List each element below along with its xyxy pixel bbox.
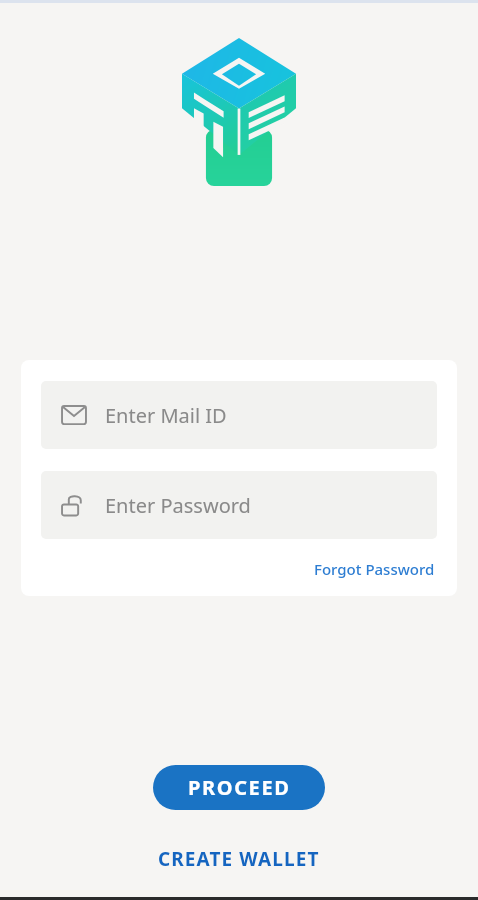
staticText: CREATE WALLET xyxy=(158,846,320,872)
button[interactable]: PROCEED xyxy=(153,765,325,810)
staticText: Enter Mail ID xyxy=(105,402,227,429)
button[interactable]: Password xyxy=(41,471,437,539)
button[interactable]: Email xyxy=(41,381,437,449)
staticText: Forgot Password xyxy=(314,559,435,579)
staticText: Enter Password xyxy=(105,492,251,519)
staticText: PROCEED xyxy=(188,774,291,801)
button[interactable]: CREATE WALLET xyxy=(146,840,332,878)
other: Email xyxy=(61,402,87,428)
button[interactable]: Forgot Password xyxy=(312,555,437,583)
other: Password xyxy=(61,492,87,518)
